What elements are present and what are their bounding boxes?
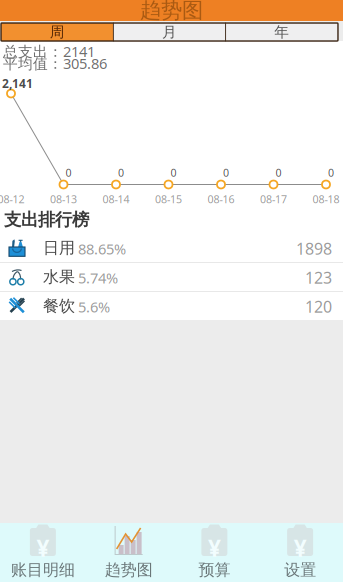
button[interactable]: 水果: [0, 262, 343, 291]
staticText: 0: [275, 165, 281, 180]
staticText: ¥: [294, 533, 307, 563]
button[interactable]: 餐饮: [0, 291, 343, 320]
staticText: 年: [274, 23, 289, 41]
staticText: 餐饮: [43, 296, 75, 316]
staticText: 120: [305, 296, 332, 317]
staticText: 支出排行榜: [4, 209, 89, 230]
staticText: 08-16: [207, 192, 234, 206]
staticText: 123: [305, 267, 332, 288]
staticText: 08-12: [0, 192, 24, 206]
staticText: 趋势图: [105, 560, 153, 580]
staticText: 0: [65, 165, 71, 180]
staticText: 5.6%: [78, 297, 110, 316]
staticText: 2,141: [2, 75, 33, 91]
button[interactable]: ¥: [171, 523, 257, 582]
staticText: 总支出：2141: [3, 41, 95, 61]
staticText: 周: [50, 23, 65, 41]
staticText: 08-18: [312, 192, 339, 206]
staticText: 水果: [43, 267, 75, 287]
staticText: 0: [118, 165, 124, 180]
staticText: 趋势图: [140, 0, 203, 24]
button[interactable]: 趋势图: [86, 523, 172, 582]
staticText: 5.74%: [78, 268, 118, 287]
staticText: 设置: [284, 560, 316, 580]
staticText: 08-14: [102, 192, 129, 206]
button[interactable]: 日用: [0, 233, 343, 262]
staticText: 月: [162, 23, 177, 41]
staticText: 账目明细: [11, 560, 75, 580]
staticText: 0: [328, 165, 334, 180]
button[interactable]: 周: [1, 23, 113, 41]
staticText: 平均值：305.86: [3, 53, 107, 73]
staticText: 08-17: [260, 192, 287, 206]
staticText: 日用: [43, 238, 75, 258]
staticText: 预算: [198, 560, 230, 580]
staticText: ¥: [36, 533, 49, 563]
staticText: 08-13: [50, 192, 77, 206]
button[interactable]: ¥: [257, 523, 343, 582]
button[interactable]: ¥: [0, 523, 86, 582]
button[interactable]: 年: [226, 23, 338, 41]
staticText: 0: [170, 165, 176, 180]
staticText: 08-15: [155, 192, 182, 206]
staticText: 88.65%: [78, 239, 126, 258]
staticText: ¥: [208, 533, 221, 563]
staticText: 0: [223, 165, 229, 180]
staticText: 1898: [296, 238, 332, 259]
button[interactable]: 月: [113, 23, 226, 41]
